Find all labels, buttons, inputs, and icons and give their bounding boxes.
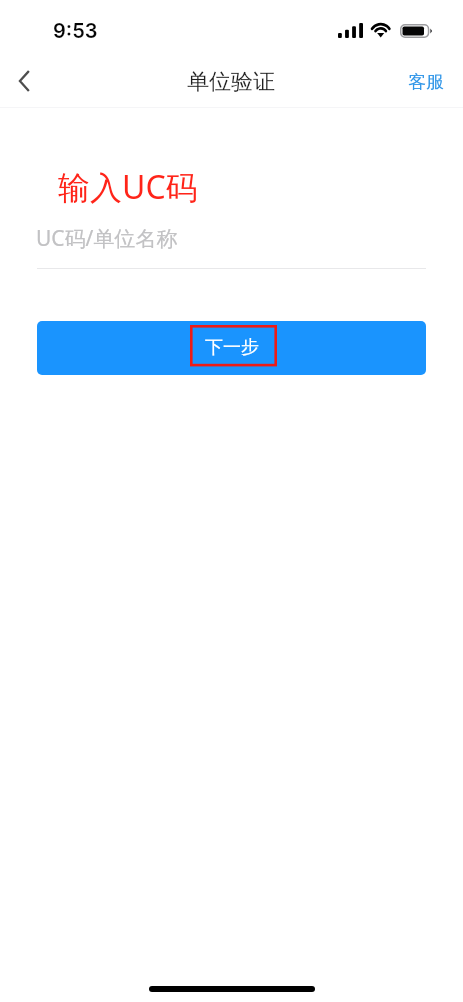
staticText: UC码/单位名称: [36, 224, 178, 253]
staticText: 9:53: [53, 19, 98, 43]
button[interactable]: 客服: [398, 63, 453, 101]
button[interactable]: Back: [2, 59, 46, 103]
staticText: 下一步: [205, 336, 259, 359]
button[interactable]: UC码/单位名称: [36, 215, 426, 269]
staticText: 输入UC码: [58, 165, 198, 209]
staticText: 客服: [408, 71, 444, 94]
button[interactable]: 下一步: [37, 321, 426, 375]
staticText: 单位验证: [187, 68, 275, 96]
